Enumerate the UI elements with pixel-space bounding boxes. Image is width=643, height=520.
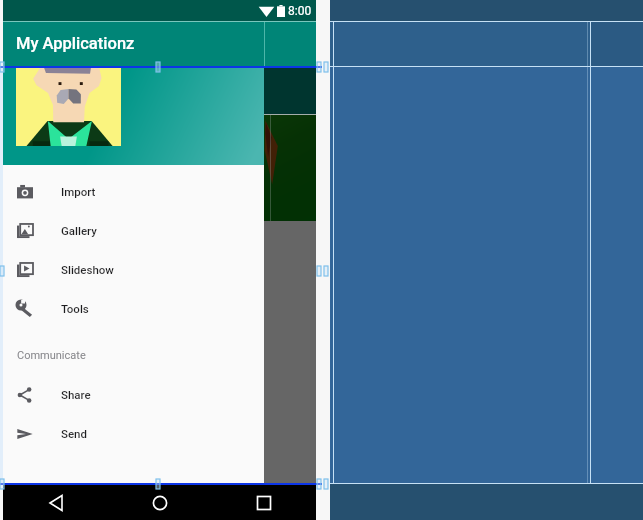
staticText: Import (61, 185, 96, 198)
staticText: 8:00 (288, 4, 312, 18)
button[interactable]: Slideshow (3, 250, 264, 289)
button[interactable]: Recent apps (251, 490, 277, 516)
staticText: Tools (61, 302, 89, 315)
staticText: Share (61, 388, 91, 401)
button[interactable]: Home (147, 490, 173, 516)
staticText: Slideshow (61, 263, 114, 276)
button[interactable]: Gallery (3, 211, 264, 250)
button[interactable]: Import (3, 172, 264, 211)
staticText: Communicate (17, 349, 86, 362)
button[interactable]: Share (3, 375, 264, 414)
staticText: Send (61, 427, 88, 440)
button[interactable]: Tools (3, 289, 264, 328)
button[interactable]: Back (43, 490, 69, 516)
staticText: My Applicationz (16, 34, 135, 53)
button[interactable]: Send (3, 414, 264, 453)
staticText: Gallery (61, 224, 97, 237)
